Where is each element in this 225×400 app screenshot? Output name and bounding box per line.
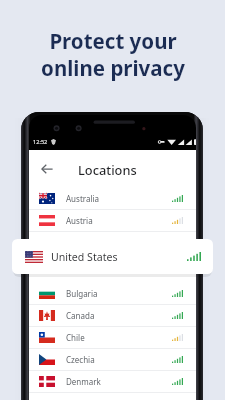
staticText: United States	[51, 250, 118, 264]
staticText: Austria	[66, 215, 93, 226]
staticText: Denmark	[66, 376, 101, 387]
staticText: Locations	[78, 161, 137, 178]
button[interactable]: Australia	[29, 188, 196, 209]
button[interactable]: United States	[12, 239, 213, 274]
button[interactable]: Canada	[29, 305, 196, 326]
staticText: Czechia	[66, 354, 95, 365]
button[interactable]: Denmark	[29, 371, 196, 392]
button[interactable]: Bulgaria	[29, 283, 196, 304]
staticText: Bulgaria	[66, 288, 98, 299]
staticText: Protect your online privacy	[41, 27, 185, 82]
button[interactable]: Czechia	[29, 349, 196, 370]
staticText: Canada	[66, 310, 95, 321]
button[interactable]: Back	[35, 157, 59, 181]
button[interactable]: Chile	[29, 327, 196, 348]
staticText: Chile	[66, 332, 85, 343]
staticText: 12:52	[33, 138, 48, 146]
staticText: Australia	[66, 193, 100, 204]
button[interactable]: Austria	[29, 210, 196, 231]
